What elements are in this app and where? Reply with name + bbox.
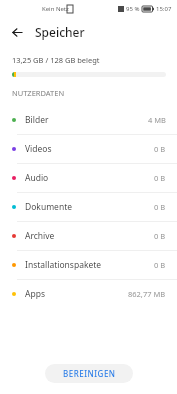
staticText: 0 B [154,144,166,154]
staticText: 0 B [154,202,166,212]
button[interactable]: Bilder [0,106,177,134]
staticText: 0 B [154,173,166,183]
button[interactable]: Zurück [7,22,27,42]
staticText: 95 % [126,5,140,13]
staticText: 4 MB [148,115,166,125]
staticText: 15:07 [156,5,172,13]
staticText: Audio [25,172,49,184]
button[interactable]: BEREINIGEN [45,364,133,383]
staticText: Apps [25,288,45,300]
staticText: NUTZERDATEN [12,88,65,98]
staticText: 0 B [154,260,166,270]
staticText: Kein Netz [42,5,69,13]
staticText: Bilder [25,114,49,126]
button[interactable]: Audio [0,164,177,192]
staticText: BEREINIGEN [63,368,116,379]
button[interactable]: Dokumente [0,193,177,221]
staticText: 0 B [154,231,166,241]
button[interactable]: Videos [0,135,177,163]
staticText: Dokumente [25,201,72,213]
staticText: 13,25 GB / 128 GB belegt [12,55,100,65]
button[interactable]: Apps [0,280,177,308]
staticText: 862,77 MB [128,289,166,299]
staticText: Speicher [35,24,85,40]
staticText: Videos [25,143,52,155]
button[interactable]: Installationspakete [0,251,177,279]
staticText: Archive [25,230,55,242]
staticText: Installationspakete [25,259,102,271]
button[interactable]: Archive [0,222,177,250]
